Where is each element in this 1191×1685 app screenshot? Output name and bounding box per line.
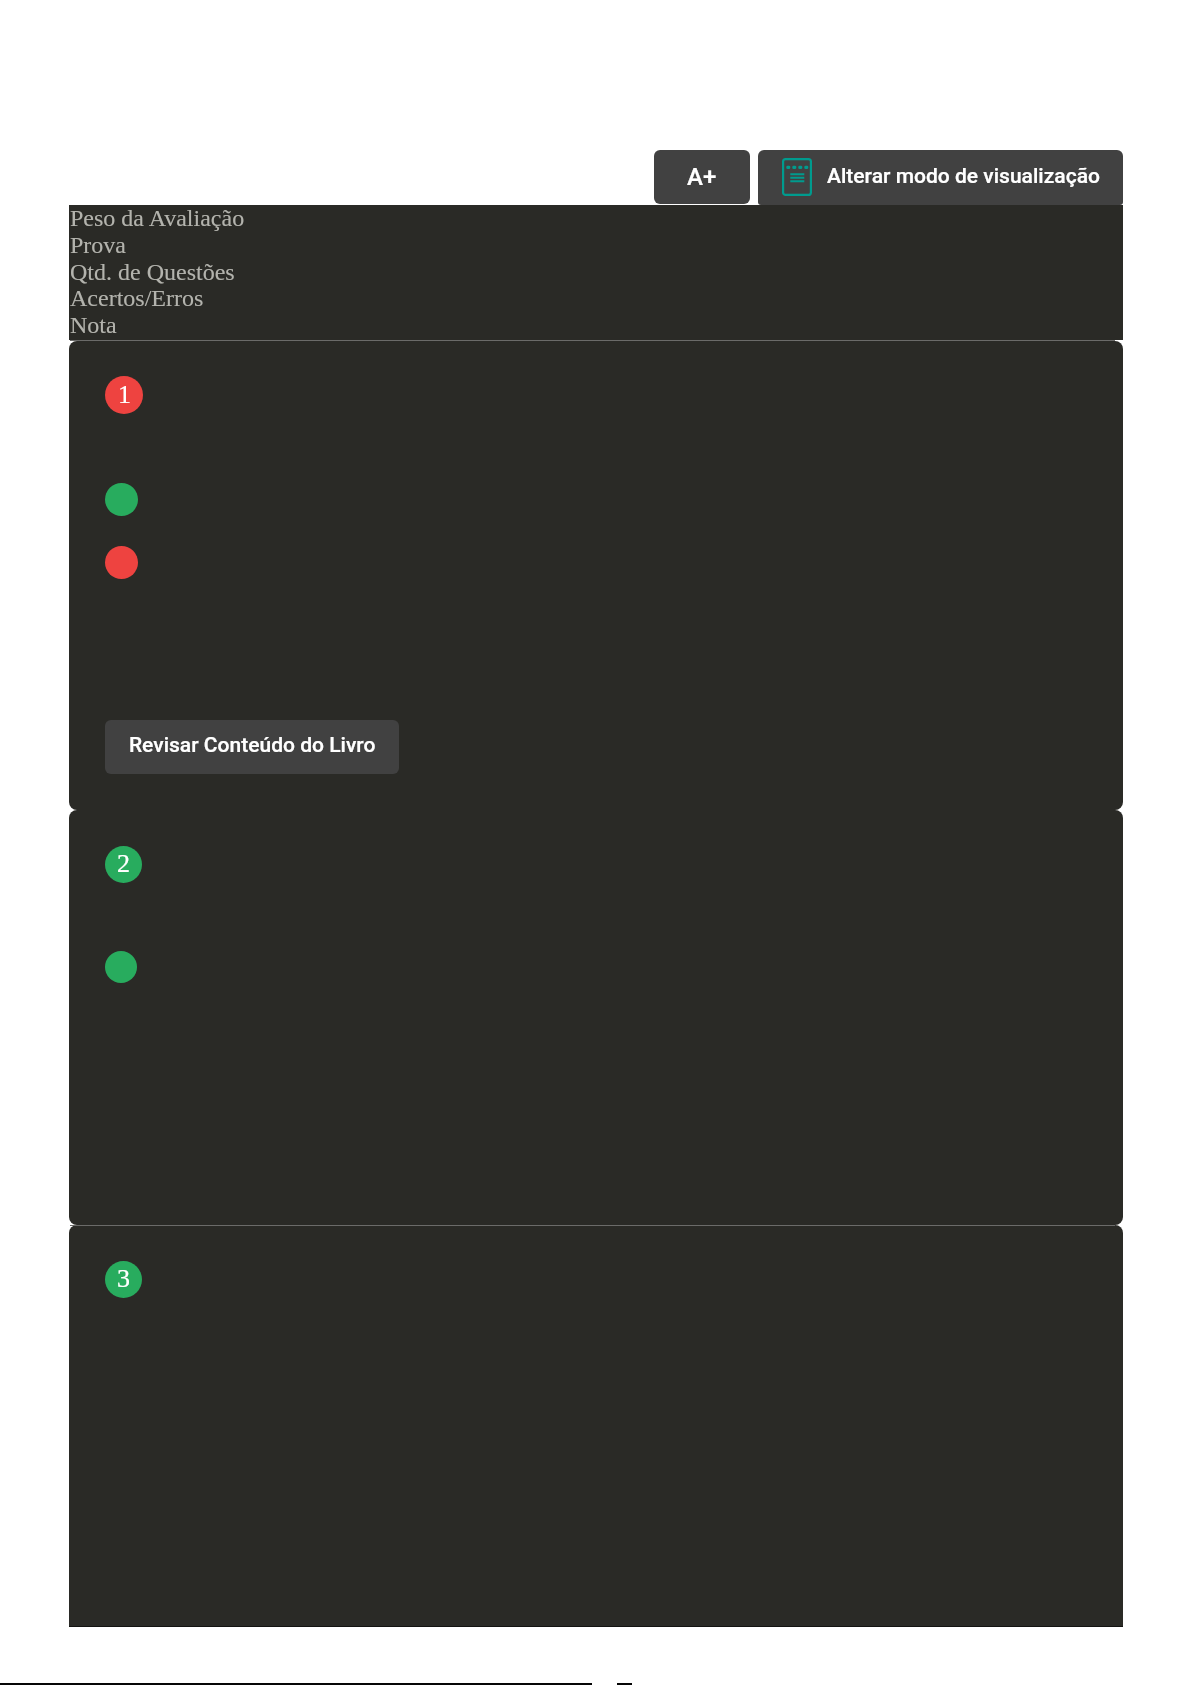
staticText: Nota	[70, 312, 117, 339]
staticText: Qtd. de Questões	[70, 259, 235, 286]
staticText: Alterar modo de visualização	[827, 164, 1100, 189]
staticText: Revisar Conteúdo do Livro	[129, 733, 376, 758]
staticText: Acertos/Erros	[70, 285, 204, 312]
staticText: Prova	[70, 232, 126, 259]
button[interactable]: Revisar Conteúdo do Livro	[105, 720, 399, 774]
button[interactable]: A+	[654, 150, 750, 204]
other: Alterar modo de visualização	[782, 158, 812, 196]
staticText: A+	[687, 163, 717, 191]
button[interactable]: Alterar modo de visualização	[758, 150, 1123, 205]
staticText: 3	[117, 1264, 130, 1293]
staticText: 2	[117, 849, 130, 878]
staticText: 1	[118, 380, 131, 409]
staticText: Peso da Avaliação	[70, 205, 245, 232]
